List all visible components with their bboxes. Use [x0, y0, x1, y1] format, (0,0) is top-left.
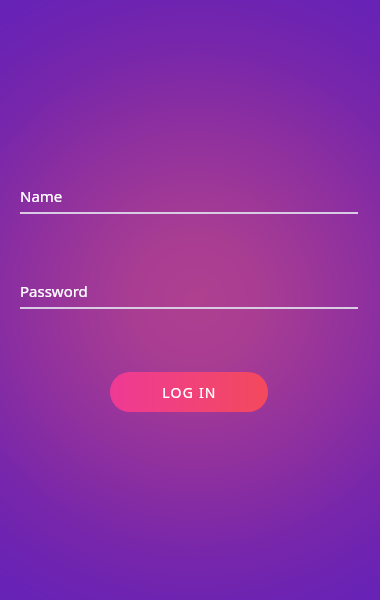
button[interactable]: LOG IN [110, 372, 268, 412]
button[interactable]: Password [20, 281, 358, 309]
staticText: Password [20, 281, 88, 301]
staticText: LOG IN [162, 383, 217, 402]
staticText: Name [20, 186, 63, 206]
button[interactable]: Name [20, 186, 358, 214]
